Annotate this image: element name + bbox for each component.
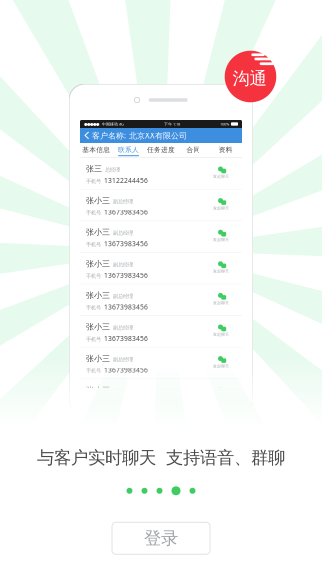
staticText: 副总经理 [113, 230, 133, 236]
staticText: 张小三 [86, 322, 110, 332]
button[interactable]: 基本信息 [80, 143, 112, 157]
staticText: 发起聊天 [213, 269, 229, 274]
staticText: 资料 [219, 146, 233, 154]
staticText: 100% [220, 121, 229, 127]
staticText: 副总经理 [113, 324, 133, 331]
staticText: 张小三 [86, 354, 110, 363]
staticText: 张小三 [86, 290, 110, 300]
button[interactable]: 合同 [177, 143, 210, 157]
staticText: 张小三 [86, 196, 110, 205]
staticText: 发起聊天 [213, 332, 229, 337]
button[interactable]: 张小三 [80, 221, 242, 253]
staticText: 手机号 [86, 241, 101, 248]
staticText: 13673983456 [104, 366, 148, 374]
staticText: 总经理 [105, 166, 120, 173]
button[interactable]: 张小三 [80, 348, 242, 379]
staticText: 客户名称: [92, 130, 126, 141]
staticText: 13673983456 [104, 208, 148, 216]
staticText: 发起聊天 [213, 174, 229, 179]
staticText: 张三 [86, 164, 102, 174]
staticText: 手机号 [86, 304, 101, 311]
staticText: 手机号 [86, 273, 101, 279]
staticText: 登录 [144, 528, 178, 549]
staticText: 发起聊天 [213, 237, 229, 242]
staticText: 副总经理 [113, 388, 133, 394]
button[interactable]: 任务进度 [145, 143, 177, 157]
button[interactable]: 登录 [112, 522, 210, 554]
staticText: 副总经理 [113, 198, 133, 205]
staticText: 13673983456 [104, 239, 148, 248]
button[interactable]: 张小三 [80, 316, 242, 348]
button[interactable]: 联系人 [112, 143, 145, 157]
button[interactable]: 资料 [210, 143, 242, 157]
staticText: 与客户实时聊天 支持语音、群聊 [37, 447, 285, 468]
staticText: 副总经理 [113, 356, 133, 363]
staticText: 发起聊天 [213, 300, 229, 305]
button[interactable]: 返回 [82, 129, 92, 142]
staticText: 13673983456 [104, 271, 148, 280]
staticText: 联系人 [118, 146, 139, 154]
staticText: 副总经理 [113, 261, 133, 268]
staticText: 手机号 [86, 210, 101, 216]
staticText: ●●●●● [84, 122, 99, 126]
staticText: 张小三 [86, 385, 110, 395]
staticText: 沟通 [232, 68, 266, 89]
button[interactable]: 张小三 [80, 253, 242, 284]
button[interactable]: 张小三 [80, 190, 242, 221]
staticText: 合同 [186, 146, 200, 154]
staticText: 13673983456 [104, 397, 148, 406]
staticText: 13673983456 [104, 334, 148, 343]
staticText: 13673983456 [104, 302, 148, 311]
staticText: 发起聊天 [213, 206, 229, 210]
staticText: 手机号 [86, 368, 101, 374]
button[interactable]: 张小三 [80, 379, 242, 411]
staticText: 张小三 [86, 259, 110, 269]
staticText: 手机号 [86, 178, 101, 185]
staticText: 任务进度 [147, 146, 175, 154]
staticText: 张小三 [86, 227, 110, 237]
staticText: 手机号 [86, 336, 101, 343]
staticText: 基本信息 [82, 146, 110, 154]
staticText: 北京XX有限公司 [129, 130, 187, 141]
staticText: 下午 1:18 [164, 121, 180, 127]
button[interactable]: 张三 [80, 158, 242, 190]
staticText: 13122244456 [104, 176, 148, 185]
staticText: 副总经理 [113, 293, 133, 299]
button[interactable]: 张小三 [80, 284, 242, 316]
staticText: 手机号 [86, 399, 101, 406]
staticText: 中国移动 4G [102, 121, 124, 127]
staticText: 发起聊天 [213, 364, 229, 368]
